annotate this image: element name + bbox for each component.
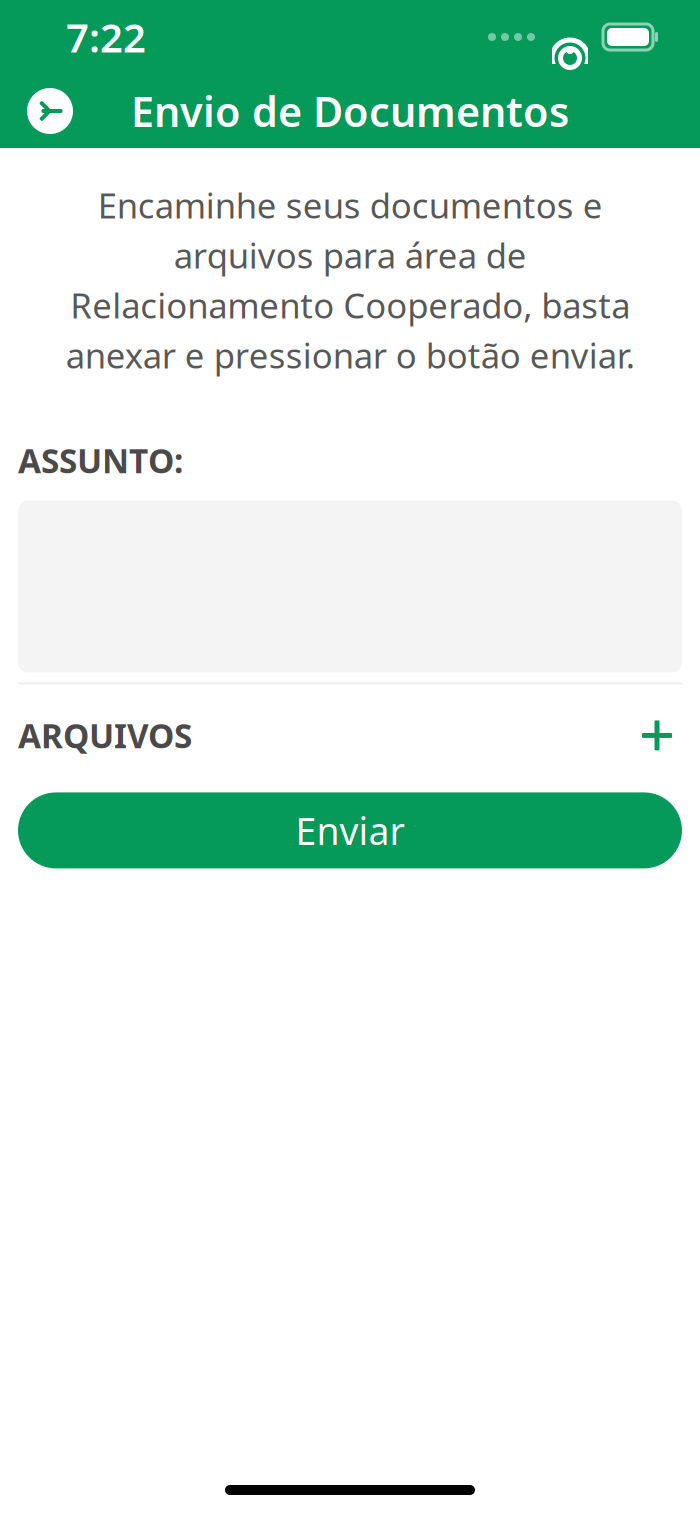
staticText: ASSUNTO: bbox=[18, 438, 183, 482]
button[interactable]: Enviar bbox=[18, 792, 682, 868]
staticText: Envio de Documentos bbox=[131, 84, 569, 138]
button[interactable]: Voltar bbox=[18, 79, 82, 143]
staticText: Encaminhe seus documentos e arquivos par… bbox=[65, 182, 634, 378]
staticText: 7:22 bbox=[66, 10, 146, 63]
staticText: ARQUIVOS bbox=[18, 713, 192, 758]
button[interactable]: Adicionar arquivo bbox=[630, 708, 684, 762]
staticText: Enviar bbox=[295, 806, 404, 855]
